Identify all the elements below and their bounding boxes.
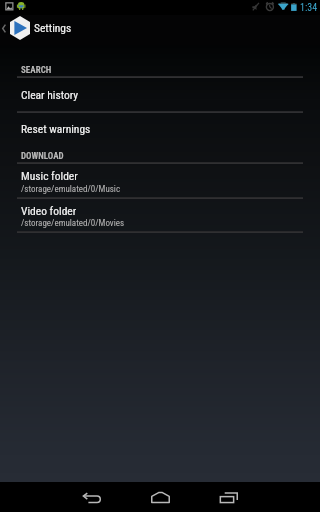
staticText: Clear history [21, 88, 79, 101]
staticText: Music folder [21, 169, 78, 182]
staticText: Video folder [21, 204, 77, 217]
button[interactable]: Reset warnings [0, 112, 320, 147]
staticText: DOWNLOAD [21, 151, 64, 162]
staticText: /storage/emulated/0/Movies [21, 218, 125, 229]
staticText: 1:34 [300, 2, 318, 14]
button[interactable]: Recent apps [212, 482, 246, 512]
staticText: Reset warnings [21, 122, 91, 135]
staticText: SEARCH [21, 65, 52, 76]
button[interactable]: Video folder [0, 198, 320, 232]
button[interactable]: Settings [34, 21, 72, 34]
button[interactable]: Navigate up [0, 15, 10, 45]
button[interactable]: Back [76, 482, 110, 512]
button[interactable]: Home [144, 482, 178, 512]
staticText: /storage/emulated/0/Music [21, 184, 121, 195]
button[interactable]: Clear history [0, 77, 320, 112]
button[interactable]: Music folder [0, 163, 320, 198]
